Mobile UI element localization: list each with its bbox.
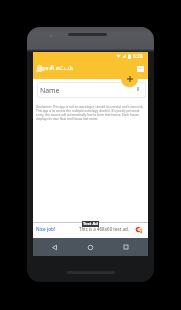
staticText: 6:28 xyxy=(133,53,143,60)
button[interactable]: Add xyxy=(121,70,138,87)
staticText: Nice job! xyxy=(36,226,56,232)
button[interactable]: Advertisement xyxy=(33,222,148,238)
staticText: Name xyxy=(40,86,60,95)
staticText: This is a 468x60 test ad. xyxy=(79,226,129,232)
button[interactable]: Home xyxy=(83,238,97,256)
button[interactable]: Name xyxy=(38,83,145,97)
button[interactable]: Back xyxy=(47,238,61,256)
staticText: இராசி கட்டம் xyxy=(36,63,73,72)
staticText: Test Ad xyxy=(83,221,98,227)
staticText: Disclaimer: This app is not an astrologe… xyxy=(36,105,145,121)
button[interactable]: Recent apps xyxy=(119,238,133,256)
button[interactable]: Save chart xyxy=(137,66,144,72)
